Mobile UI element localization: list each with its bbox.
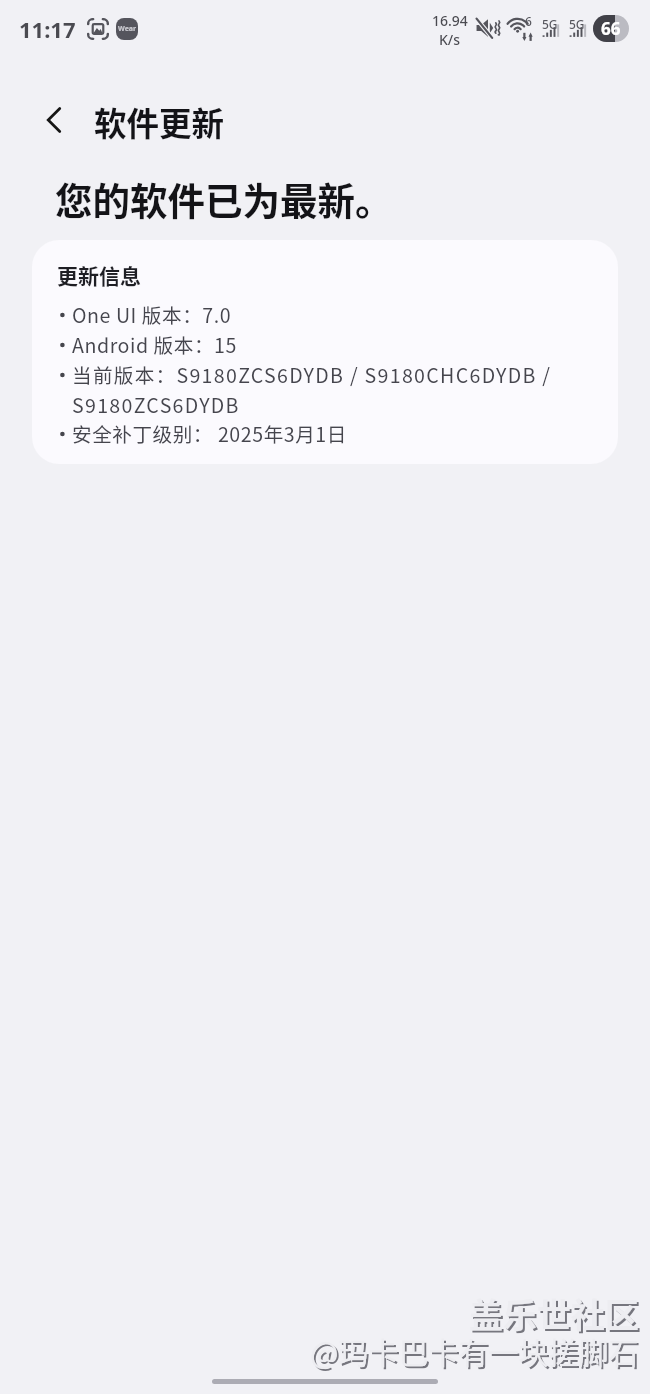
staticText: 66	[601, 17, 621, 40]
staticText: 16.94	[432, 11, 468, 30]
button[interactable]: 更新信息	[32, 240, 618, 464]
staticText: 6	[525, 13, 532, 29]
button[interactable]: Back	[28, 93, 82, 147]
staticText: 5G	[569, 16, 585, 32]
staticText: 当前版本：S9180ZCS6DYDB / S9180CHC6DYDB / S91…	[72, 360, 592, 419]
staticText: Android 版本：15	[72, 330, 237, 358]
staticText: 盖乐世社区	[469, 1289, 639, 1338]
staticText: Wear	[118, 24, 137, 34]
staticText: @玛卡巴卡有一块搓脚石	[310, 1329, 639, 1372]
staticText: 11:17	[19, 14, 76, 44]
staticText: K/s	[439, 30, 461, 45]
staticText: One UI 版本：7.0	[72, 300, 232, 328]
staticText: 软件更新	[94, 98, 225, 145]
staticText: 安全补丁级别： 2025年3月1日	[72, 419, 347, 447]
staticText: 盖乐世社区	[471, 1291, 641, 1340]
staticText: @玛卡巴卡有一块搓脚石	[312, 1331, 641, 1374]
staticText: 更新信息	[57, 260, 141, 290]
staticText: 您的软件已为最新。	[55, 171, 393, 225]
staticText: 5G	[542, 16, 558, 32]
